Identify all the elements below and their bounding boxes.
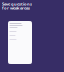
staticText: Save questions [2,1,32,7]
staticText: for weak areas [2,5,30,11]
